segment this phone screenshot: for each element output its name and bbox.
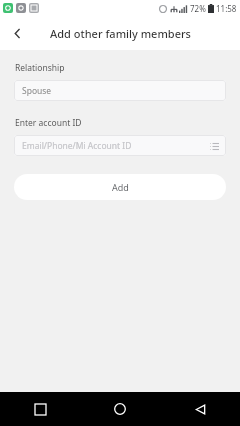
button[interactable]: Choose contact: [207, 139, 221, 153]
staticText: Relationship: [15, 62, 65, 74]
staticText: 11:58: [216, 3, 237, 14]
button[interactable]: Email/Phone/Mi Account ID: [14, 135, 226, 156]
button[interactable]: Spouse: [14, 80, 226, 101]
staticText: Add other family members: [50, 26, 191, 41]
button[interactable]: Back: [4, 20, 30, 46]
button[interactable]: Add: [14, 174, 226, 200]
staticText: Add: [112, 181, 129, 193]
button[interactable]: Recents: [0, 392, 80, 426]
button[interactable]: Back: [160, 392, 240, 426]
staticText: Spouse: [22, 85, 52, 97]
staticText: Enter account ID: [15, 117, 82, 129]
staticText: Email/Phone/Mi Account ID: [22, 140, 132, 152]
staticText: 72%: [190, 3, 206, 14]
button[interactable]: Home: [80, 392, 160, 426]
